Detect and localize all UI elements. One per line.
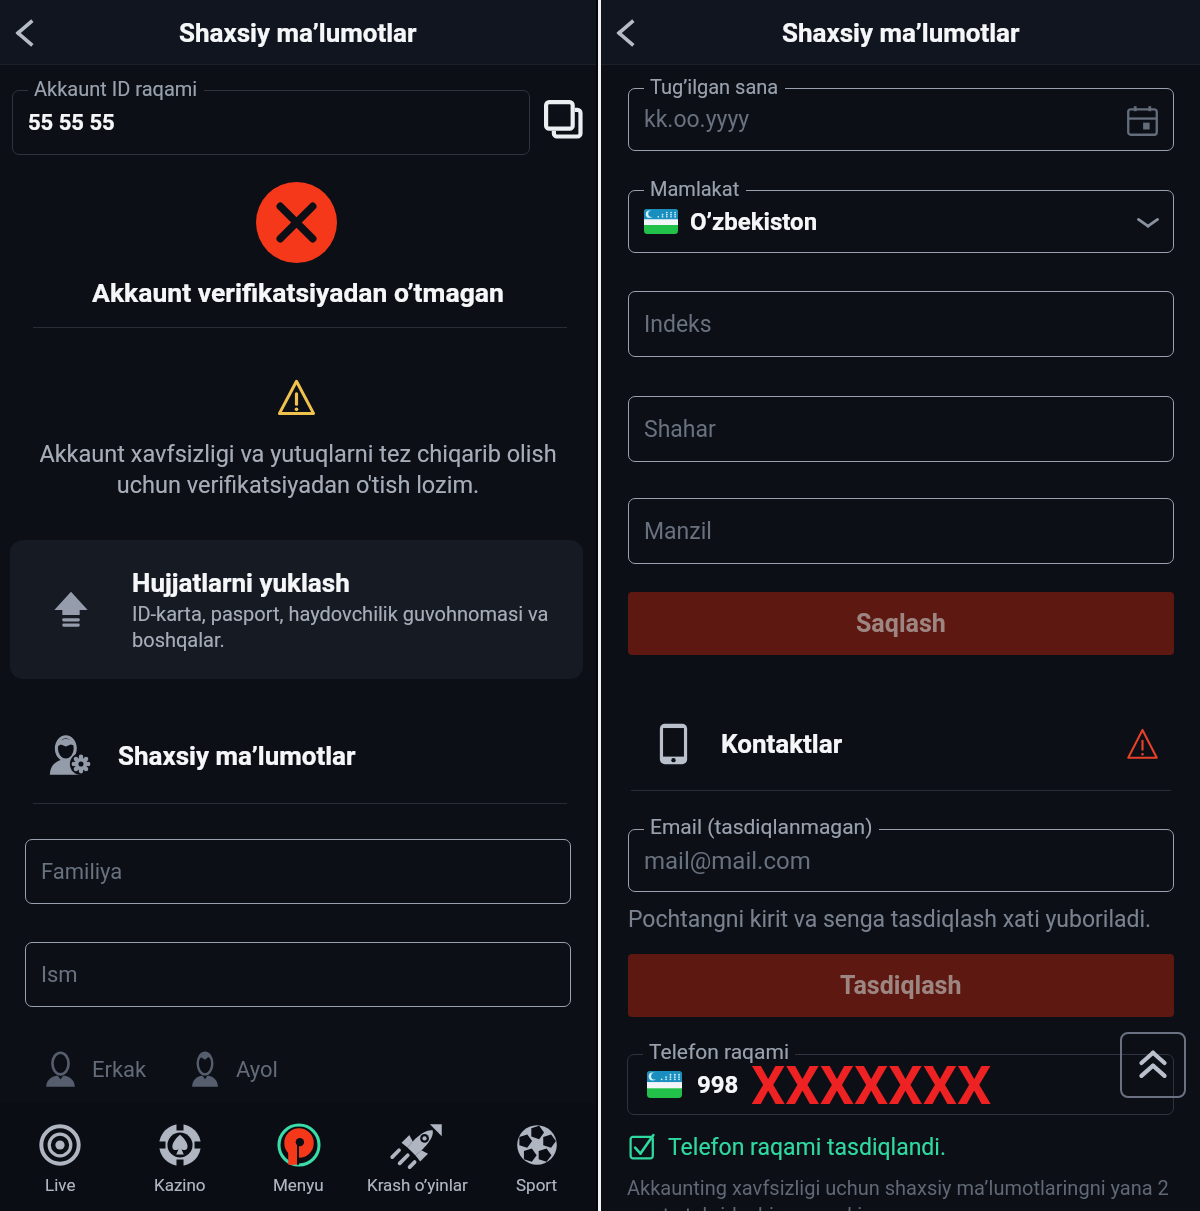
button[interactable]: Tasdiqlash xyxy=(628,954,1174,1017)
staticText: Telefon raqami xyxy=(649,1040,789,1065)
staticText: Telefon raqami tasdiqlandi. xyxy=(668,1134,946,1161)
staticText: Tug’ilgan sana xyxy=(650,75,779,98)
button[interactable]: mail@mail.com xyxy=(628,829,1174,892)
button[interactable]: Shahar xyxy=(628,396,1174,462)
staticText: 55 55 55 xyxy=(28,110,115,136)
button[interactable]: Sport xyxy=(477,1103,596,1211)
button[interactable]: Ism xyxy=(25,942,571,1007)
staticText: XXXXXXX xyxy=(751,1054,992,1115)
staticText: Akkaunt xavfsizligi va yutuqlarni tez ch… xyxy=(24,440,572,498)
staticText: Ism xyxy=(41,962,78,988)
staticText: Mamlakat xyxy=(650,177,740,200)
staticText: Shaxsiy ma’lumotlar xyxy=(118,741,356,771)
button[interactable]: Erkak xyxy=(45,1052,147,1087)
staticText: Menyu xyxy=(273,1175,324,1195)
staticText: Tasdiqlash xyxy=(840,971,962,1000)
button[interactable]: Scroll to top xyxy=(1120,1032,1186,1098)
button[interactable]: Shaxsiy ma’lumotlar xyxy=(0,724,596,788)
staticText: Indeks xyxy=(644,311,712,338)
button[interactable]: 55 55 55 xyxy=(12,90,530,155)
staticText: Akkaunt ID raqami xyxy=(34,77,198,100)
button[interactable]: O’zbekiston xyxy=(628,190,1174,253)
button[interactable]: Pick date xyxy=(1120,98,1164,142)
staticText: Krash o’yinlar xyxy=(367,1175,468,1195)
button[interactable]: Kazino xyxy=(120,1103,239,1211)
staticText: Hujjatlarni yuklash xyxy=(132,568,350,598)
staticText: Email (tasdiqlanmagan) xyxy=(650,815,873,840)
staticText: kk.oo.yyyy xyxy=(644,106,750,133)
staticText: Saqlash xyxy=(856,609,946,638)
staticText: mail@mail.com xyxy=(644,847,811,875)
button[interactable]: Manzil xyxy=(628,498,1174,564)
button[interactable]: Hujjatlarni yuklash xyxy=(10,540,583,679)
staticText: Live xyxy=(45,1175,76,1195)
staticText: Familiya xyxy=(41,859,123,885)
staticText: 998 xyxy=(697,1071,739,1099)
staticText: Pochtangni kirit va senga tasdiqlash xat… xyxy=(628,906,1152,933)
staticText: Akkaunt verifikatsiyadan o’tmagan xyxy=(0,277,596,308)
button[interactable]: kk.oo.yyyy xyxy=(628,88,1174,151)
staticText: ID-karta, pasport, haydovchilik guvohnom… xyxy=(132,602,571,652)
staticText: Shahar xyxy=(644,416,716,443)
button[interactable]: Indeks xyxy=(628,291,1174,357)
staticText: Manzil xyxy=(644,518,712,545)
button[interactable]: Back xyxy=(603,10,649,56)
staticText: O’zbekiston xyxy=(690,208,818,236)
button[interactable]: Back xyxy=(2,10,48,56)
button[interactable]: 998 xyxy=(627,1054,1174,1115)
staticText: Ayol xyxy=(236,1057,278,1083)
staticText: Shaxsiy ma’lumotlar xyxy=(782,18,1020,48)
staticText: Erkak xyxy=(92,1057,147,1083)
staticText: Kazino xyxy=(154,1175,206,1195)
button[interactable]: Ayol xyxy=(191,1052,278,1087)
button[interactable]: Live xyxy=(0,1103,120,1211)
staticText: Shaxsiy ma’lumotlar xyxy=(179,18,417,48)
button[interactable]: Saqlash xyxy=(628,592,1174,655)
button[interactable]: Familiya xyxy=(25,839,571,904)
staticText: Akkaunting xavfsizligi uchun shaxsiy ma’… xyxy=(627,1176,1175,1211)
button[interactable]: Menyu xyxy=(239,1103,358,1211)
button[interactable]: Krash o’yinlar xyxy=(358,1103,477,1211)
staticText: Sport xyxy=(516,1175,558,1195)
staticText: Kontaktlar xyxy=(721,729,843,759)
button[interactable]: Copy account id xyxy=(540,96,586,142)
